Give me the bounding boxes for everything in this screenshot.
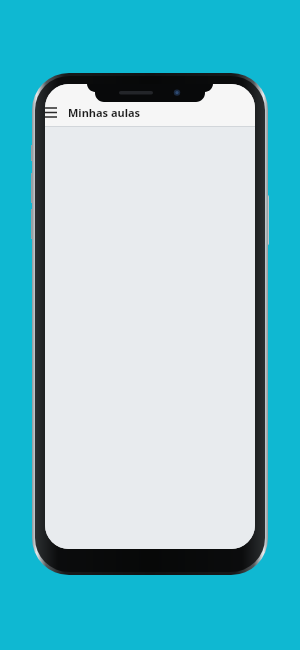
button[interactable]: Open navigation menu bbox=[45, 100, 61, 124]
staticText: Minhas aulas bbox=[68, 105, 141, 120]
